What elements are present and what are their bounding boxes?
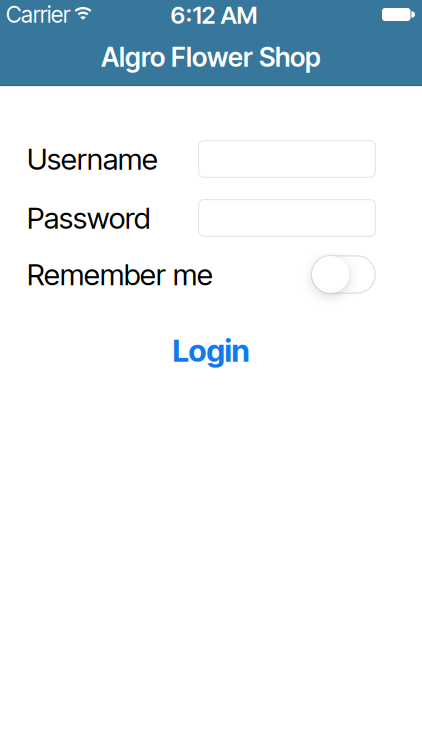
button[interactable]: Login <box>172 332 249 369</box>
staticText: Carrier <box>6 1 70 28</box>
staticText: Algro Flower Shop <box>101 41 321 73</box>
staticText: Remember me <box>27 257 213 292</box>
staticText: Login <box>172 332 249 369</box>
staticText: 6:12 AM <box>170 0 257 29</box>
staticText: Password <box>27 200 150 236</box>
button[interactable] <box>198 199 376 237</box>
staticText: Username <box>27 141 158 177</box>
button[interactable] <box>311 255 376 294</box>
button[interactable] <box>198 140 376 178</box>
